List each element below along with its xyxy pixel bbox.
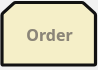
button[interactable]: Order <box>0 0 98 70</box>
staticText: Order <box>26 24 73 46</box>
